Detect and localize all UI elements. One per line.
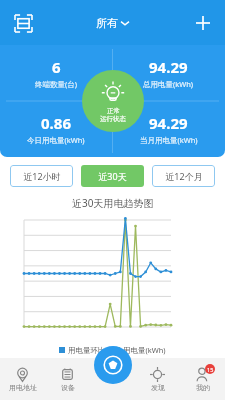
button[interactable]: 正常 — [82, 70, 144, 132]
staticText: 94.29 — [149, 113, 188, 133]
staticText: 94.29 — [149, 57, 188, 77]
button[interactable]: Monitor — [94, 346, 132, 384]
button[interactable]: 6 — [0, 45, 112, 101]
staticText: 近12个月 — [165, 170, 203, 182]
staticText: 设备 — [61, 383, 75, 392]
button[interactable]: Add — [187, 7, 219, 39]
button[interactable]: 15 — [180, 358, 225, 400]
staticText: 今日用电量(kWh) — [27, 135, 85, 145]
staticText: 6 — [52, 57, 61, 77]
staticText: 发现 — [151, 383, 165, 392]
button[interactable]: 近30天 — [81, 165, 144, 187]
staticText: 用电量环比 — [68, 346, 106, 355]
staticText: 用电量(kWh) — [123, 345, 166, 355]
staticText: 近30天 — [98, 170, 127, 182]
staticText: 当月用电量(kWh) — [140, 135, 198, 145]
button[interactable]: 用电地址 — [0, 358, 45, 400]
staticText: 15 — [207, 366, 214, 373]
staticText: 近12小时 — [23, 170, 61, 182]
staticText: 运行状态 — [100, 115, 126, 123]
staticText: 0.86 — [41, 113, 71, 133]
staticText: 近30天用电趋势图 — [72, 196, 154, 210]
button[interactable]: 所有 — [96, 16, 129, 30]
staticText: 用电地址 — [9, 383, 37, 392]
button[interactable]: 94.29 — [112, 45, 225, 101]
staticText: 总用电量(kWh) — [143, 79, 194, 89]
button[interactable]: 94.29 — [112, 101, 225, 157]
button[interactable]: Scan — [6, 6, 40, 40]
staticText: 我的 — [196, 383, 210, 392]
staticText: 所有 — [96, 16, 118, 30]
button[interactable]: 近12小时 — [10, 165, 73, 187]
staticText: 正常 — [107, 107, 120, 115]
button[interactable]: 发现 — [135, 358, 180, 400]
button[interactable]: 近12个月 — [152, 165, 215, 187]
button[interactable]: 0.86 — [0, 101, 112, 157]
staticText: 终端数量(台) — [35, 79, 77, 89]
button[interactable]: 设备 — [45, 358, 90, 400]
